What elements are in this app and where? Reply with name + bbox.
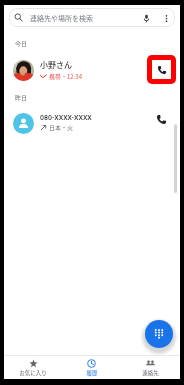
button[interactable]: 連絡先や場所を検索	[9, 8, 175, 27]
button[interactable]: 080-XXXX-XXXX	[4, 105, 180, 141]
staticText: 小野さん	[40, 59, 72, 71]
button[interactable]: Call 080-XXXX-XXXX	[150, 108, 173, 131]
button[interactable]: 小野さん	[4, 52, 180, 88]
staticText: 連絡先や場所を検索	[30, 13, 93, 23]
button[interactable]: お気に入り	[4, 356, 62, 379]
staticText: 連絡先	[142, 369, 159, 377]
staticText: お気に入り	[19, 369, 47, 377]
button[interactable]: More options	[159, 11, 173, 25]
button[interactable]: 連絡先	[121, 356, 180, 379]
button[interactable]: Dialpad	[145, 320, 173, 348]
staticText: 携帯・12:34	[49, 72, 82, 81]
button[interactable]: Voice search	[139, 11, 153, 25]
staticText: 080-XXXX-XXXX	[40, 114, 92, 122]
staticText: 履歴	[86, 369, 98, 377]
staticText: 今日	[15, 39, 28, 48]
button[interactable]: 履歴	[62, 356, 121, 379]
staticText: 日本・火	[49, 123, 74, 132]
button[interactable]: Call 小野さん	[152, 60, 171, 79]
staticText: 昨日	[15, 93, 28, 102]
